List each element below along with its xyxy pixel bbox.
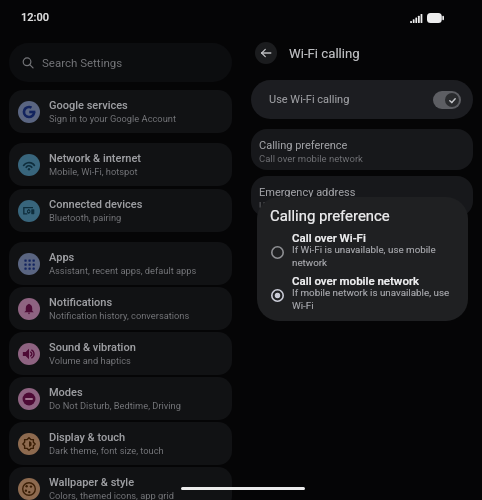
staticText: Network & internet	[49, 152, 141, 165]
button[interactable]: Display & touch	[9, 422, 232, 465]
staticText: Call over mobile network	[259, 153, 363, 164]
staticText: Sound & vibration	[49, 341, 136, 354]
staticText: Modes	[49, 386, 83, 399]
button[interactable]: Use Wi-Fi calling	[251, 80, 473, 119]
button[interactable]: Search Settings	[9, 43, 232, 82]
staticText: Wi-Fi calling	[289, 46, 360, 61]
button[interactable]: Back	[255, 42, 277, 64]
staticText: Do Not Disturb, Bedtime, Driving	[49, 400, 181, 411]
staticText: Bluetooth, pairing	[49, 212, 122, 223]
button[interactable]: Network & internet	[9, 143, 232, 186]
staticText: Volume and haptics	[49, 355, 131, 366]
button[interactable]: Modes	[9, 377, 232, 420]
button[interactable]: Call over Wi-Fi	[270, 231, 458, 269]
staticText: Notifications	[49, 296, 113, 309]
button[interactable]: Call over mobile network	[270, 274, 458, 312]
button[interactable]: Connected devices	[9, 189, 232, 232]
staticText: Dark theme, font size, touch	[49, 445, 164, 456]
staticText: Call over Wi-Fi	[292, 231, 366, 244]
staticText: Search Settings	[42, 56, 123, 69]
staticText: Wallpaper & style	[49, 476, 135, 489]
staticText: Google services	[49, 99, 128, 112]
staticText: Notification history, conversations	[49, 310, 190, 321]
staticText: Calling preference	[270, 207, 390, 224]
button[interactable]: Wallpaper & style	[9, 467, 232, 500]
staticText: 12:00	[21, 11, 49, 24]
button[interactable]: Emergency address	[251, 176, 473, 217]
staticText: Use Wi-Fi calling	[269, 93, 350, 106]
button[interactable]: Apps	[9, 242, 232, 285]
staticText: Mobile, Wi-Fi, hotspot	[49, 166, 138, 177]
staticText: Emergency address	[259, 186, 356, 199]
staticText: If mobile network is unavailable, use Wi…	[292, 287, 458, 311]
button[interactable]: Notifications	[9, 287, 232, 330]
button[interactable]: Google services	[9, 90, 232, 133]
button[interactable]: Calling preference	[251, 129, 473, 170]
staticText: Apps	[49, 251, 75, 264]
staticText: Calling preference	[259, 139, 348, 152]
staticText: Sign in to your Google Account	[49, 113, 176, 124]
staticText: Unavailable	[259, 200, 308, 211]
staticText: Colors, themed icons, app grid	[49, 490, 174, 500]
staticText: Display & touch	[49, 431, 126, 444]
staticText: Assistant, recent apps, default apps	[49, 265, 197, 276]
staticText: Call over mobile network	[292, 274, 419, 287]
staticText: Connected devices	[49, 198, 143, 211]
staticText: If Wi-Fi is unavailable, use mobile netw…	[292, 244, 458, 268]
button[interactable]: Sound & vibration	[9, 332, 232, 375]
